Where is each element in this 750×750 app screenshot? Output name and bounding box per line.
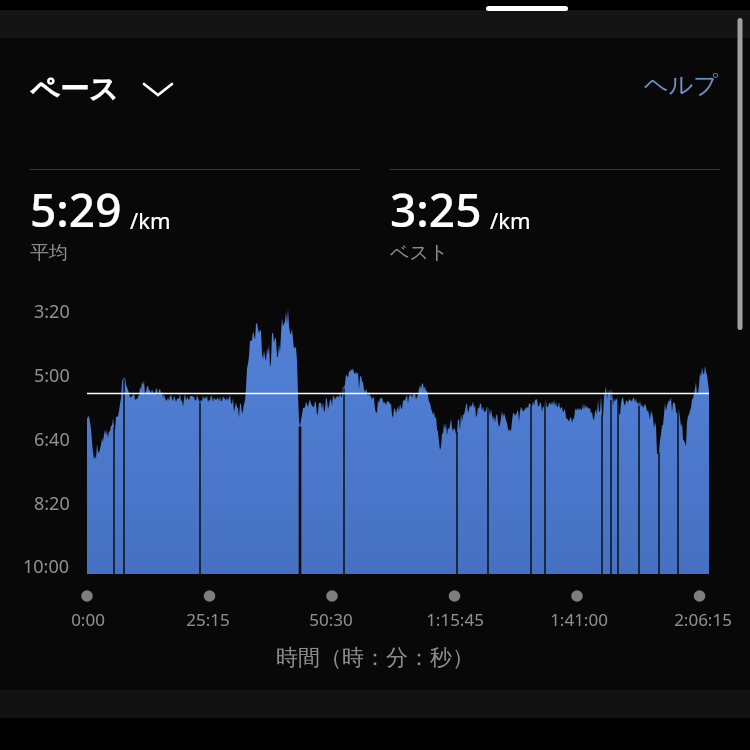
staticText: 1:15:45 [426, 608, 484, 631]
staticText: 時間（時：分：秒） [276, 644, 474, 672]
staticText: ヘルプ [644, 70, 718, 100]
staticText: 25:15 [186, 608, 230, 631]
staticText: 2:06:15 [674, 608, 732, 631]
staticText: 3:20 [34, 299, 70, 324]
staticText: 5:29 [30, 178, 122, 241]
staticText: 0:00 [71, 608, 105, 631]
staticText: 平均 [30, 241, 68, 265]
staticText: ベスト [390, 241, 449, 265]
staticText: 10:00 [23, 554, 70, 579]
staticText: 50:30 [309, 608, 353, 631]
staticText: 1:41:00 [550, 608, 608, 631]
button[interactable]: ペース [30, 71, 172, 108]
button[interactable]: ヘルプ [644, 70, 718, 100]
staticText: 8:20 [34, 491, 70, 516]
staticText: 3:25 [390, 178, 482, 241]
staticText: 6:40 [34, 427, 70, 452]
staticText: 5:00 [34, 363, 70, 388]
staticText: /km [490, 205, 531, 235]
staticText: ペース [30, 71, 119, 108]
staticText: /km [130, 205, 171, 235]
